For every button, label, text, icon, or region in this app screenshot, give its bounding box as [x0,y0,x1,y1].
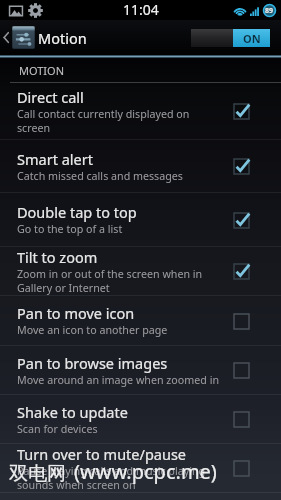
button[interactable]: Shake to update [0,395,281,443]
staticText: Direct call [17,87,84,107]
other: Back [3,32,9,43]
staticText: Shake to update [17,402,128,422]
staticText: 双电网 [9,462,66,486]
button[interactable]: Tilt to zoom [0,247,281,295]
button[interactable]: Enabled [221,251,261,291]
button[interactable]: Disabled [221,350,261,390]
button[interactable]: Disabled [221,448,261,488]
button[interactable]: Disabled [221,301,261,341]
staticText: Pause playing calls and music playing so… [17,464,220,492]
staticText: Call contact currently displayed on scre… [17,107,220,135]
button[interactable]: Enabled [221,200,261,240]
staticText: Scan for devices [17,422,98,437]
staticText: 11:04 [123,0,159,19]
staticText: ON [243,31,261,46]
button[interactable]: Pan to move icon [0,296,281,345]
staticText: Double tap to top [17,202,137,222]
staticText: Move around an image when zoomed in [17,373,220,388]
staticText: Catch missed calls and messages [17,169,183,184]
staticText: Pan to browse images [17,353,168,373]
staticText: Pan to move icon [17,303,135,323]
button[interactable]: Enabled [221,91,261,131]
staticText: Move an icon to another page [17,323,168,338]
staticText: MOTION [19,63,65,78]
staticText: Go to the top of a list [17,222,123,237]
button[interactable]: Smart alert [0,140,281,192]
staticText: Zoom in or out of the screen when in Gal… [17,267,220,295]
button[interactable]: Enabled [221,146,261,186]
staticText: (www.pcpc.me) [74,458,217,485]
button[interactable]: Disabled [221,399,261,439]
button[interactable]: Pan to browse images [0,346,281,394]
button[interactable]: Direct call [0,83,281,139]
staticText: Motion [38,28,87,48]
button[interactable]: Motion on off switch [191,29,270,47]
staticText: Tilt to zoom [17,247,98,267]
button[interactable]: Back [0,20,95,55]
button[interactable]: Double tap to top [0,193,281,246]
staticText: Smart alert [17,149,93,169]
staticText: Turn over to mute/pause [17,444,187,464]
button[interactable]: Turn over to mute/pause [0,444,281,492]
staticText: 89 [265,6,274,16]
